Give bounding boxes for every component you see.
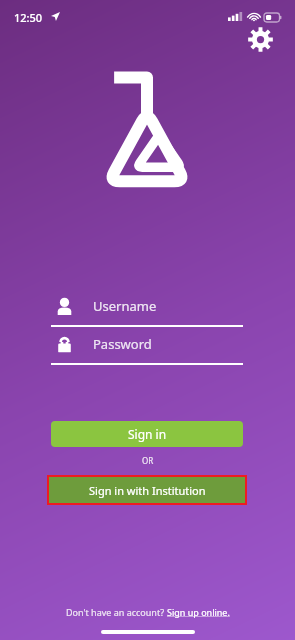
- button[interactable]: Password: [51, 333, 243, 365]
- staticText: 12:50: [14, 10, 43, 25]
- button[interactable]: Sign in: [51, 421, 243, 447]
- staticText: Sign in: [128, 426, 167, 442]
- button[interactable]: Username: [51, 295, 243, 327]
- staticText: Don't have an account?: [66, 606, 167, 618]
- staticText: OR: [142, 455, 154, 466]
- button[interactable]: Settings: [243, 22, 277, 56]
- button[interactable]: Sign in with Institution: [49, 477, 245, 503]
- staticText: Sign in with Institution: [89, 483, 206, 498]
- button[interactable]: Don't have an account?: [66, 606, 230, 618]
- staticText: Password: [93, 335, 152, 353]
- staticText: Username: [93, 297, 157, 315]
- staticText: Sign up online.: [167, 606, 230, 618]
